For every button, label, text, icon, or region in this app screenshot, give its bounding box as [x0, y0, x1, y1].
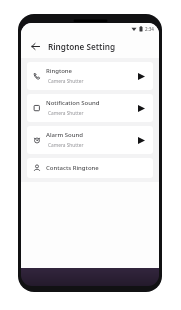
button[interactable]: Play Notification Sound [135, 102, 147, 114]
staticText: Alarm Sound [46, 131, 83, 139]
staticText: Camera Shutter [48, 110, 84, 117]
button[interactable]: Notification Sound [27, 94, 153, 122]
staticText: 2:34 [145, 26, 154, 32]
button[interactable]: Play Alarm Sound [135, 134, 147, 146]
staticText: Notification Sound [46, 99, 100, 107]
button[interactable]: Contacts Ringtone [27, 158, 153, 178]
button[interactable]: Play Ringtone [135, 70, 147, 82]
staticText: Ringtone Setting [48, 41, 116, 52]
staticText: Camera Shutter [48, 78, 84, 85]
staticText: Ringtone [46, 67, 73, 75]
button[interactable]: Back [27, 38, 43, 54]
button[interactable]: Alarm Sound [27, 126, 153, 154]
button[interactable]: Ringtone [27, 62, 153, 90]
staticText: Contacts Ringtone [46, 164, 99, 172]
staticText: Camera Shutter [48, 142, 84, 149]
